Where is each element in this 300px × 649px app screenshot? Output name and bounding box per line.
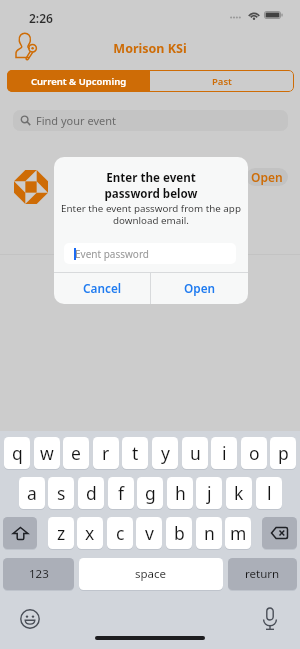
button[interactable]: i xyxy=(211,437,237,469)
staticText: a xyxy=(27,481,37,505)
staticText: l xyxy=(267,481,272,505)
staticText: Morison KSi xyxy=(0,40,300,57)
button[interactable]: Event password xyxy=(64,243,236,264)
button[interactable]: return xyxy=(228,558,297,590)
staticText: e xyxy=(71,441,81,465)
button[interactable]: w xyxy=(34,437,60,469)
staticText: s xyxy=(57,481,66,505)
staticText: k xyxy=(234,481,244,505)
button[interactable]: Shift xyxy=(3,517,37,549)
button[interactable]: space xyxy=(79,558,223,590)
button[interactable]: Account login xyxy=(14,32,42,62)
staticText: z xyxy=(57,521,66,545)
button[interactable]: u xyxy=(182,437,208,469)
staticText: Cancel xyxy=(83,280,122,296)
staticText: Open xyxy=(251,169,283,185)
button[interactable]: Open xyxy=(151,272,248,304)
staticText: space xyxy=(135,566,167,582)
staticText: m xyxy=(230,521,247,545)
button[interactable]: d xyxy=(78,477,104,509)
staticText: 2:26 xyxy=(29,10,53,26)
button[interactable]: 123 xyxy=(3,558,74,590)
button[interactable]: x xyxy=(77,517,103,549)
button[interactable]: Open xyxy=(246,168,288,186)
button[interactable]: k xyxy=(226,477,252,509)
staticText: return xyxy=(245,566,280,582)
staticText: y xyxy=(161,441,170,465)
button[interactable]: a xyxy=(19,477,45,509)
staticText: Enter the event password below xyxy=(54,170,248,201)
button[interactable]: Dictation xyxy=(262,607,278,631)
staticText: o xyxy=(249,441,260,465)
staticText: h xyxy=(175,481,186,505)
staticText: c xyxy=(116,521,125,545)
staticText: q xyxy=(12,441,23,465)
button[interactable]: n xyxy=(196,517,222,549)
staticText: i xyxy=(222,441,227,465)
staticText: Enter the event password from the app do… xyxy=(60,202,242,227)
staticText: Event password xyxy=(75,247,149,261)
button[interactable]: s xyxy=(48,477,74,509)
button[interactable]: Find your event xyxy=(13,110,288,131)
button[interactable]: r xyxy=(93,437,119,469)
button[interactable]: m xyxy=(225,517,251,549)
staticText: Find your event xyxy=(36,113,116,128)
button[interactable]: c xyxy=(107,517,133,549)
staticText: Open xyxy=(184,280,216,296)
staticText: v xyxy=(145,521,154,545)
staticText: Past xyxy=(212,75,232,88)
button[interactable]: Past xyxy=(150,70,294,92)
button[interactable]: Current & Upcoming xyxy=(7,70,150,92)
staticText: b xyxy=(174,521,185,545)
button[interactable]: Cancel xyxy=(54,272,150,304)
staticText: j xyxy=(207,481,212,505)
button[interactable]: l xyxy=(256,477,282,509)
button[interactable]: z xyxy=(48,517,74,549)
button[interactable]: h xyxy=(167,477,193,509)
button[interactable]: g xyxy=(137,477,163,509)
staticText: g xyxy=(145,481,156,505)
button[interactable]: Backspace xyxy=(262,517,297,549)
staticText: r xyxy=(102,441,110,465)
button[interactable]: y xyxy=(152,437,178,469)
button[interactable]: f xyxy=(108,477,134,509)
button[interactable]: b xyxy=(166,517,192,549)
button[interactable]: p xyxy=(270,437,296,469)
staticText: f xyxy=(118,481,125,505)
staticText: d xyxy=(86,481,97,505)
staticText: w xyxy=(40,441,54,465)
staticText: u xyxy=(190,441,201,465)
button[interactable]: j xyxy=(196,477,222,509)
staticText: Current & Upcoming xyxy=(31,75,127,88)
staticText: x xyxy=(85,521,95,545)
staticText: 123 xyxy=(29,566,49,582)
button[interactable]: o xyxy=(241,437,267,469)
staticText: n xyxy=(204,521,215,545)
button[interactable]: t xyxy=(122,437,148,469)
button[interactable]: q xyxy=(4,437,30,469)
staticText: p xyxy=(278,441,289,465)
button[interactable]: v xyxy=(136,517,162,549)
staticText: t xyxy=(132,441,139,465)
button[interactable]: Emoji keyboard xyxy=(20,609,40,629)
button[interactable]: e xyxy=(63,437,89,469)
